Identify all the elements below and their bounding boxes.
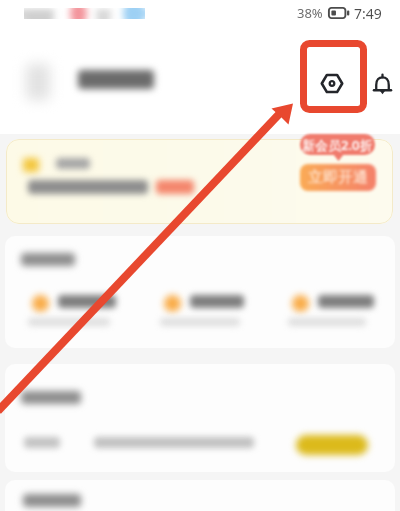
button[interactable] bbox=[6, 139, 393, 224]
button[interactable]: 新会员2.0折 bbox=[300, 134, 375, 155]
button[interactable] bbox=[152, 286, 272, 338]
button[interactable]: Settings bbox=[308, 61, 356, 106]
button[interactable]: Notifications bbox=[364, 66, 400, 102]
button[interactable] bbox=[280, 286, 400, 338]
button[interactable] bbox=[20, 286, 140, 338]
staticText: 新会员2.0折 bbox=[302, 136, 373, 154]
staticText: 7:49 bbox=[354, 4, 382, 23]
staticText: 立即开通 bbox=[308, 168, 368, 187]
staticText: 38% bbox=[297, 4, 323, 22]
button[interactable]: 立即开通 bbox=[300, 164, 376, 191]
